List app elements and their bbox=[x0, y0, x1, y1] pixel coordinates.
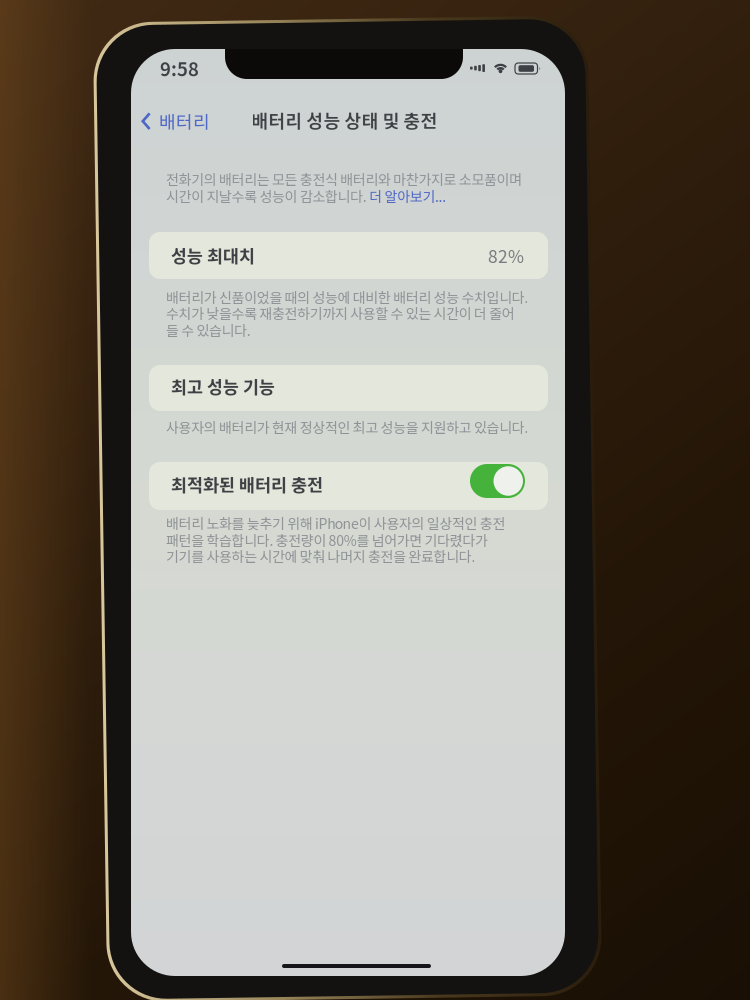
staticText: 82% bbox=[488, 243, 524, 268]
staticText: 배터리가 신품이었을 때의 성능에 대비한 배터리 성능 수치입니다. bbox=[166, 287, 528, 307]
staticText: 시간이 지날수록 성능이 감소합니다. bbox=[166, 186, 369, 206]
staticText: 수치가 낮을수록 재충전하기까지 사용할 수 있는 시간이 더 줄어 bbox=[166, 303, 515, 323]
staticText: 성능 최대치 bbox=[171, 242, 255, 268]
staticText: 들 수 있습니다. bbox=[166, 320, 251, 340]
staticText: 패턴을 학습합니다. 충전량이 80%를 넘어가면 기다렸다가 bbox=[166, 530, 488, 550]
staticText: 배터리 성능 상태 및 충전 bbox=[251, 107, 437, 133]
button[interactable]: 배터리 bbox=[136, 104, 226, 138]
staticText: 사용자의 배터리가 현재 정상적인 최고 성능을 지원하고 있습니다. bbox=[166, 417, 528, 437]
staticText: 전화기의 배터리는 모든 충전식 배터리와 마찬가지로 소모품이며 bbox=[166, 169, 522, 189]
staticText: 더 알아보기... bbox=[369, 186, 446, 206]
staticText: 9:58 bbox=[160, 54, 199, 81]
button[interactable]: 성능 최대치 bbox=[149, 232, 548, 279]
staticText: 기기를 사용하는 시간에 맞춰 나머지 충전을 완료합니다. bbox=[166, 546, 475, 566]
staticText: 배터리 bbox=[159, 108, 210, 134]
button[interactable]: 더 알아보기... bbox=[369, 186, 446, 206]
staticText: 최고 성능 기능 bbox=[171, 373, 275, 399]
button[interactable]: 최적화된 배터리 충전 bbox=[149, 462, 548, 510]
staticText: 최적화된 배터리 충전 bbox=[171, 471, 323, 497]
button[interactable]: 최고 성능 기능 bbox=[149, 365, 548, 411]
staticText: 배터리 노화를 늦추기 위해 iPhone이 사용자의 일상적인 충전 bbox=[166, 513, 505, 533]
